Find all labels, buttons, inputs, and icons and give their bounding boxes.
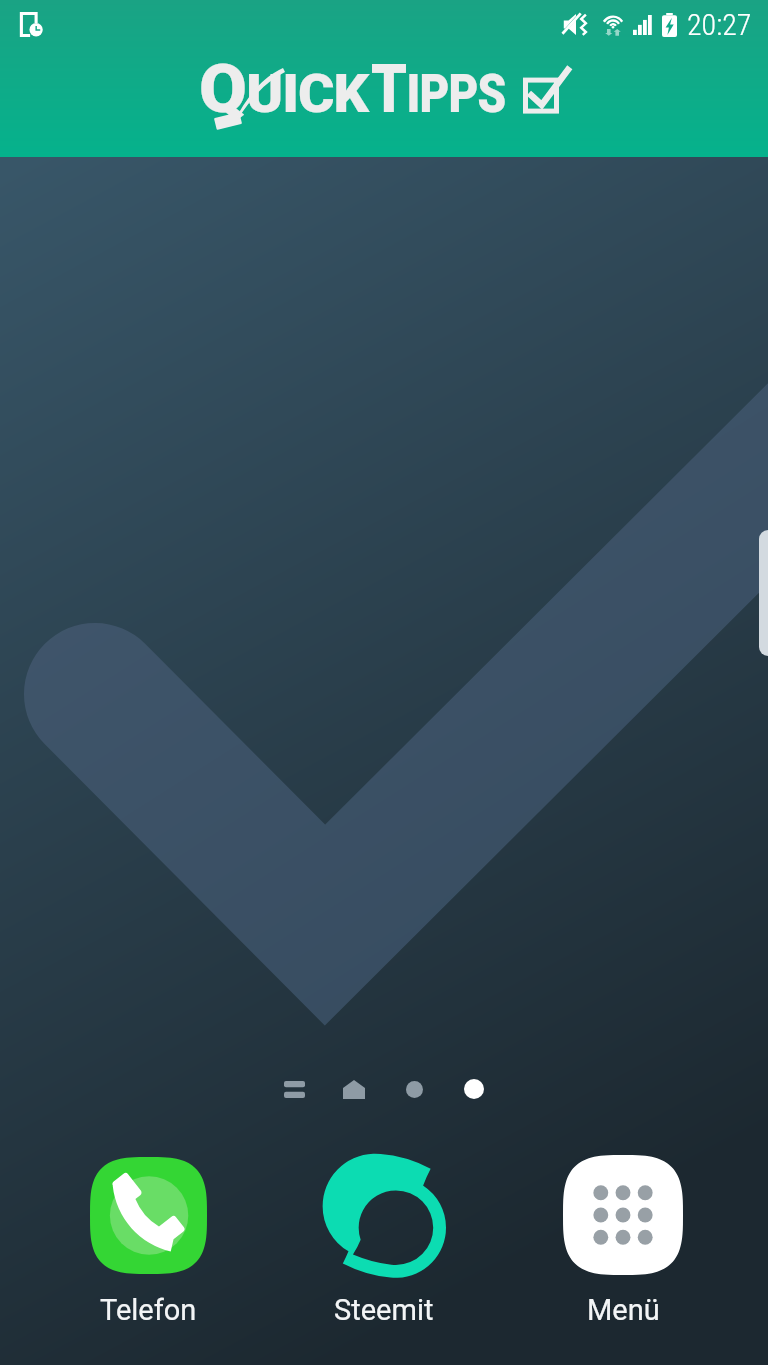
button[interactable]: Menü <box>523 1152 723 1327</box>
staticText: Telefon <box>100 1293 197 1327</box>
other: Current page <box>464 1079 484 1099</box>
button[interactable]: Feed page <box>264 1069 324 1109</box>
staticText: Steemit <box>334 1293 434 1327</box>
button[interactable]: Current page <box>444 1069 504 1109</box>
other: Feed page <box>284 1081 305 1098</box>
button[interactable]: Page three <box>384 1069 444 1109</box>
staticText: Menü <box>587 1293 660 1327</box>
button[interactable]: Telefon <box>48 1152 248 1327</box>
button[interactable]: Steemit <box>284 1152 484 1327</box>
other: Notification <box>20 12 43 37</box>
staticText: 20:27 <box>687 7 752 42</box>
other: Page three <box>406 1081 423 1098</box>
button[interactable]: Home page <box>324 1069 384 1109</box>
other: Home page <box>343 1080 365 1099</box>
